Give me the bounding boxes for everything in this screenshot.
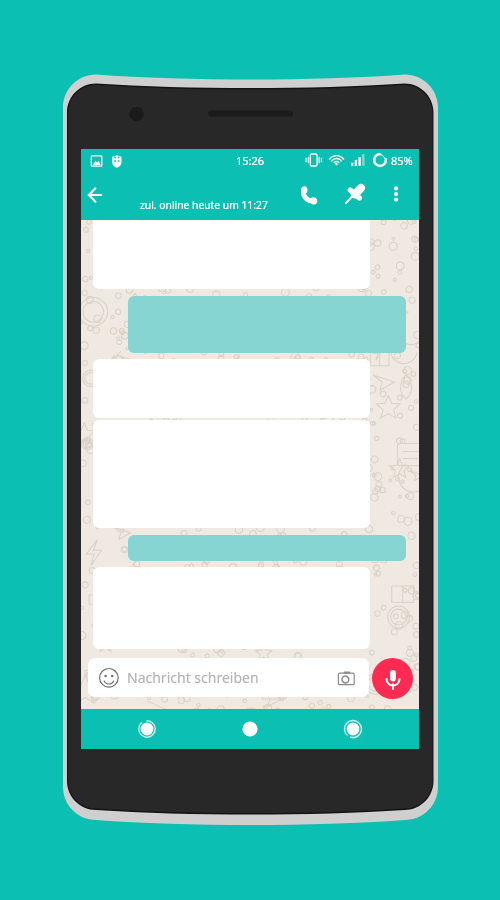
button[interactable]: Back [81, 176, 114, 214]
button[interactable]: Recent apps [336, 712, 370, 746]
button[interactable]: Call [291, 177, 327, 213]
button[interactable]: Record voice message [372, 658, 413, 699]
button[interactable]: More options [380, 178, 412, 210]
button[interactable] [128, 296, 406, 353]
button[interactable]: Home [233, 712, 267, 746]
button[interactable] [93, 214, 370, 289]
button[interactable]: Back [130, 712, 164, 746]
button[interactable] [128, 535, 406, 561]
staticText: 85% [391, 153, 413, 168]
staticText: 15:26 [236, 153, 265, 168]
button[interactable]: Nachricht schreiben [88, 658, 369, 697]
staticText: Nachricht schreiben [127, 668, 259, 687]
button[interactable]: Pin [337, 176, 373, 212]
staticText: zul. online heute um 11:27 [140, 198, 268, 212]
